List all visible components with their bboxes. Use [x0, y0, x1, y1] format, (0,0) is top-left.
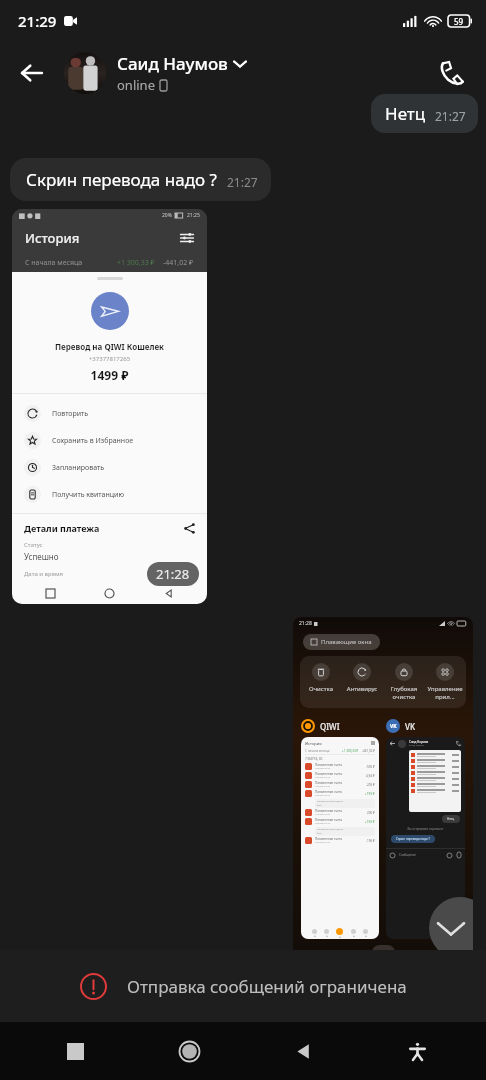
staticText: Нетц: [385, 102, 426, 125]
staticText: +1 300,33 ₽: [117, 258, 155, 268]
staticText: -196 ₽: [366, 839, 375, 843]
staticText: ●: [339, 936, 341, 938]
staticText: -505 ₽: [366, 765, 375, 769]
staticText: 21:28: [299, 620, 312, 627]
button[interactable]: Получить квитанцию: [12, 481, 207, 508]
staticText: Перевод на карту в другой банк: [317, 828, 343, 835]
button[interactable]: Очистка: [301, 663, 341, 693]
staticText: Пополнение счета: [315, 790, 342, 794]
staticText: Перевод на карту в другой банк: [317, 800, 343, 807]
staticText: ●: [314, 935, 316, 937]
staticText: 7.03.2021 в 21:2: [315, 785, 331, 788]
button[interactable]: Home: [132, 1022, 246, 1080]
staticText: +37377817265: [12, 355, 207, 363]
staticText: ●: [353, 935, 355, 937]
staticText: История: [25, 229, 80, 247]
staticText: Скрин перевода надо ?: [26, 168, 217, 191]
staticText: Пополнение счета: [315, 781, 342, 785]
button[interactable]: Recent apps: [18, 1022, 132, 1080]
staticText: Отправка сообщений ограничена: [127, 975, 407, 998]
button[interactable]: Скрин перевода надо ?: [10, 158, 271, 201]
staticText: VK: [405, 721, 415, 732]
staticText: 21:28: [156, 565, 190, 583]
staticText: Получить квитанцию: [52, 490, 125, 500]
button[interactable]: Отправка сообщений ограничена: [0, 950, 486, 1022]
staticText: ●: [326, 935, 328, 937]
staticText: С начала месяца: [305, 749, 330, 753]
staticText: История: [305, 741, 322, 746]
staticText: 20%: [162, 212, 172, 219]
staticText: 4,94 ₽: [366, 774, 375, 778]
staticText: Скрин перевода надо ?: [396, 837, 430, 841]
staticText: Очистка: [301, 685, 341, 693]
button[interactable]: Глубокая очистка: [384, 663, 424, 701]
staticText: Антивирус: [342, 685, 382, 693]
staticText: 1499 ₽: [12, 367, 207, 383]
staticText: QIWI: [320, 721, 340, 732]
button[interactable]: Scroll down: [429, 897, 473, 959]
staticText: 7 МАРТА, ВС: [305, 757, 323, 761]
staticText: Пополнение счета: [315, 772, 342, 776]
staticText: Дата и время: [24, 570, 64, 578]
button[interactable]: Плавающие окна: [303, 634, 380, 650]
staticText: Глубокая очистка: [384, 685, 424, 701]
staticText: +150 ₽: [365, 820, 375, 824]
staticText: Пополнение счета: [315, 763, 342, 767]
staticText: Пополнение счета: [315, 818, 342, 822]
staticText: -205 ₽: [366, 783, 375, 787]
button[interactable]: Back: [8, 49, 56, 97]
staticText: ●: [365, 935, 367, 937]
staticText: Статус: [24, 541, 43, 549]
staticText: -441,02 ₽: [163, 258, 194, 268]
staticText: online: [117, 76, 155, 94]
staticText: +199 ₽: [365, 792, 375, 796]
staticText: Запланировать: [52, 463, 105, 473]
staticText: 7.03.2021 в 21:2: [315, 794, 331, 797]
button[interactable]: 20%: [12, 209, 207, 604]
staticText: 7.03.2021 в 21:2: [315, 776, 331, 779]
staticText: 21:27: [227, 174, 258, 190]
staticText: был(а) недавно: [409, 744, 424, 747]
button[interactable]: 21:28: [293, 617, 473, 965]
button[interactable]: Управление прил...: [425, 663, 465, 701]
staticText: Пополнение счета: [315, 837, 342, 841]
staticText: Саид Наумов: [117, 52, 228, 75]
staticText: Саид Наумов: [409, 740, 429, 744]
staticText: 7.03.2021 в 21:2: [315, 841, 331, 844]
staticText: Сообщение: [399, 853, 416, 857]
staticText: С начала месяца: [25, 258, 83, 268]
staticText: Пополнение счета: [315, 809, 342, 813]
staticText: Нетц: [447, 817, 455, 821]
button[interactable]: Повторить: [12, 400, 207, 427]
staticText: Повторить: [52, 409, 89, 419]
staticText: +1 300,33 ₽: [342, 749, 359, 753]
staticText: 7.03.2021 в 21:2: [315, 767, 331, 770]
button[interactable]: Accessibility: [360, 1022, 474, 1080]
staticText: 7.03.2021 в 21:2: [315, 822, 331, 825]
button[interactable]: Запланировать: [12, 454, 207, 481]
button[interactable]: Антивирус: [342, 663, 382, 693]
staticText: 21:27: [435, 108, 466, 124]
button[interactable]: Нетц: [371, 94, 478, 133]
staticText: VK: [390, 723, 397, 730]
staticText: Управление прил...: [425, 685, 465, 701]
staticText: Перевод на QIWI Кошелек: [12, 341, 207, 352]
button[interactable]: Саид Наумов: [64, 52, 246, 94]
button[interactable]: Close all: [372, 945, 395, 960]
staticText: 7.03.2021 в 21:2: [315, 813, 331, 816]
staticText: Успешно: [24, 551, 59, 562]
staticText: Вы отправили скриншот: [386, 827, 465, 831]
staticText: Сохранить в Избранное: [52, 436, 134, 446]
staticText: -441,02 ₽: [362, 749, 375, 753]
button[interactable]: Call: [428, 49, 476, 97]
staticText: 59: [454, 16, 464, 27]
staticText: 200 ₽: [367, 811, 375, 815]
staticText: 21:25: [187, 212, 200, 219]
staticText: 21:29: [18, 11, 57, 31]
button[interactable]: Сохранить в Избранное: [12, 427, 207, 454]
staticText: Плавающие окна: [321, 638, 372, 646]
button[interactable]: Back: [246, 1022, 360, 1080]
staticText: Детали платежа: [24, 522, 100, 534]
